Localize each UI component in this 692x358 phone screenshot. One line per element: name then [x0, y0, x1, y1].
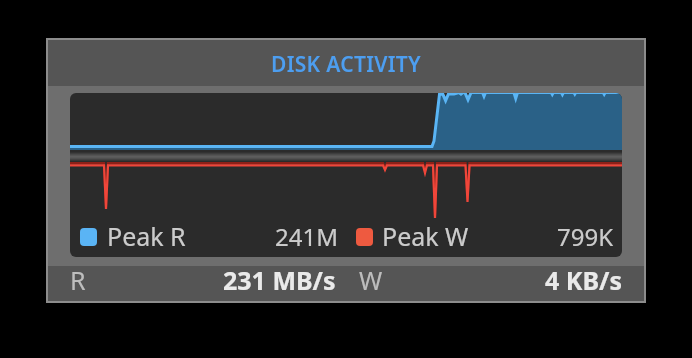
staticText: DISK ACTIVITY: [271, 50, 422, 79]
staticText: R: [70, 263, 86, 297]
staticText: Peak W: [382, 219, 469, 253]
button[interactable]: DISK ACTIVITY: [48, 40, 644, 86]
staticText: 799K: [557, 220, 614, 253]
staticText: 241M: [275, 220, 338, 253]
staticText: 4 KB/s: [545, 263, 622, 297]
button[interactable]: Peak R: [70, 93, 622, 257]
button[interactable]: R: [48, 266, 644, 301]
staticText: Peak R: [107, 219, 186, 253]
staticText: W: [359, 263, 383, 297]
staticText: 231 MB/s: [223, 263, 336, 297]
